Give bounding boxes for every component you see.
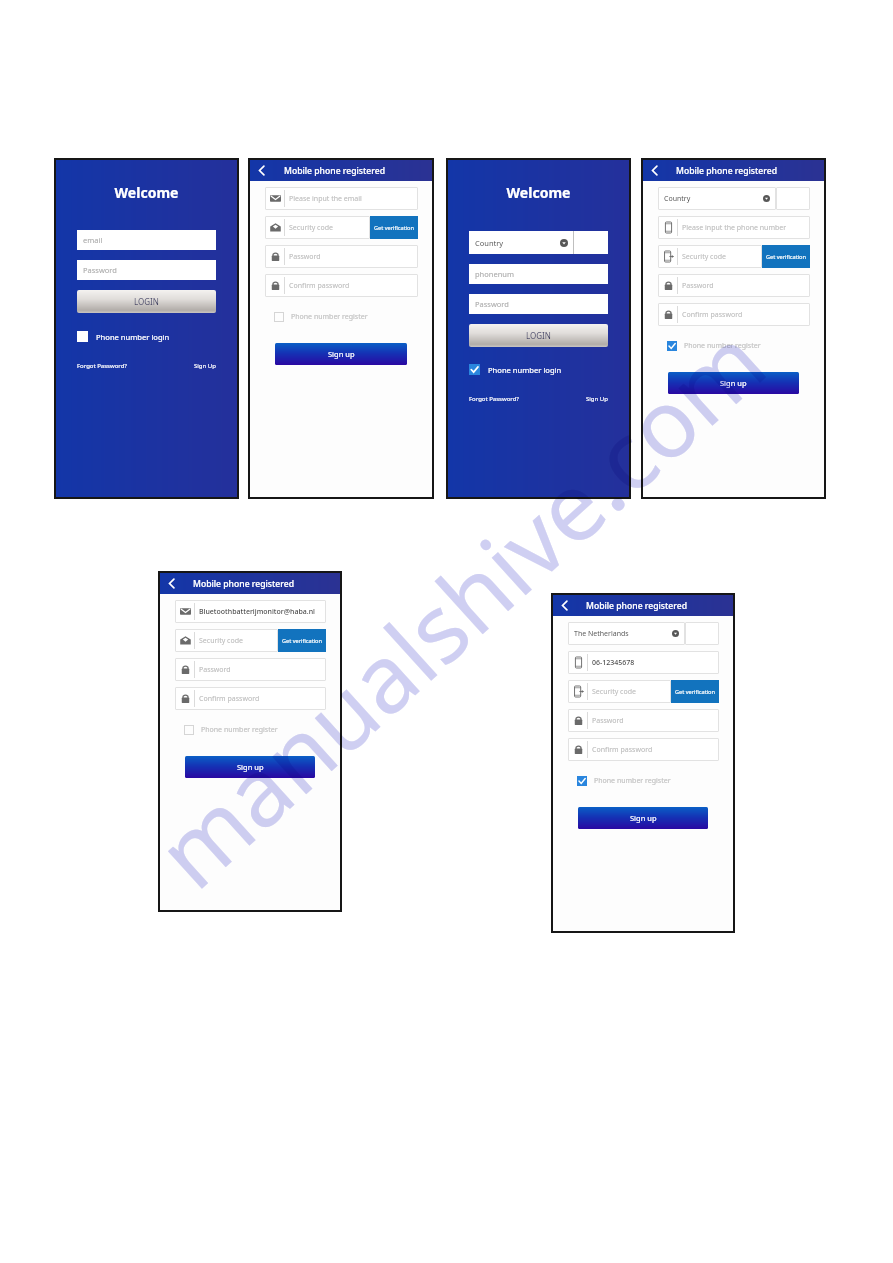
staticText: Password	[682, 281, 714, 291]
staticText: Phone number register	[684, 341, 761, 351]
staticText: Phone number register	[201, 725, 278, 735]
button[interactable]: Confirm password	[568, 738, 719, 761]
button[interactable]: Password	[265, 245, 418, 268]
button[interactable]: Phone number login	[469, 364, 629, 375]
button[interactable]: Phone number register	[577, 776, 733, 786]
staticText: Password	[592, 716, 624, 726]
staticText: Mobile phone registered	[586, 600, 687, 612]
button[interactable]: Get verification	[370, 216, 418, 239]
staticText: Sign up	[328, 349, 355, 359]
staticText: Security code	[592, 687, 636, 697]
button[interactable]: 06-12345678	[568, 651, 719, 674]
staticText: Get verification	[766, 253, 806, 261]
staticText: LOGIN	[526, 330, 551, 341]
button[interactable]: Security code	[175, 629, 278, 652]
button[interactable]: Phone number register	[667, 341, 824, 351]
staticText: Confirm password	[592, 745, 653, 755]
staticText: Bluetoothbatterijmonitor@haba.nl	[199, 607, 315, 617]
staticText: Password	[475, 299, 509, 309]
button[interactable]: Country	[469, 231, 573, 254]
staticText: Confirm password	[682, 310, 743, 320]
staticText: Security code	[682, 252, 726, 262]
staticText: Country	[664, 194, 691, 204]
button[interactable]: Password	[469, 294, 608, 314]
button[interactable]: Country code	[685, 622, 719, 645]
staticText: Please input the phone number	[682, 223, 787, 233]
button[interactable]: Please input the phone number	[658, 216, 810, 239]
staticText: Sign up	[630, 813, 657, 823]
staticText: Phone number register	[291, 312, 368, 322]
button[interactable]: Sign up	[185, 756, 315, 778]
button[interactable]: Sign up	[578, 807, 708, 829]
staticText: Phone number login	[488, 365, 562, 375]
staticText: Phone number register	[594, 776, 671, 786]
staticText: email	[83, 235, 103, 245]
staticText: Mobile phone registered	[193, 578, 294, 590]
button[interactable]: Phone number register	[184, 725, 340, 735]
button[interactable]: Confirm password	[265, 274, 418, 297]
button[interactable]: Please input the email	[265, 187, 418, 210]
staticText: Get verification	[675, 688, 715, 696]
staticText: Password	[83, 265, 117, 275]
button[interactable]: Security code	[568, 680, 671, 703]
staticText: Get verification	[282, 637, 322, 645]
staticText: LOGIN	[134, 296, 159, 307]
button[interactable]: Security code	[658, 245, 762, 268]
button[interactable]: Password	[568, 709, 719, 732]
staticText: Security code	[289, 223, 333, 233]
button[interactable]: Back	[163, 575, 180, 592]
button[interactable]: Country code	[776, 187, 810, 210]
staticText: Get verification	[374, 224, 414, 232]
button[interactable]: The Netherlands	[568, 622, 685, 645]
staticText: The Netherlands	[574, 629, 629, 639]
button[interactable]: Confirm password	[175, 687, 326, 710]
button[interactable]: Forgot Password?	[77, 362, 127, 370]
staticText: phonenum	[475, 269, 514, 279]
staticText: Sign up	[720, 378, 747, 388]
staticText: Phone number login	[96, 332, 170, 342]
button[interactable]: Country	[658, 187, 776, 210]
button[interactable]: email	[77, 230, 216, 250]
button[interactable]: LOGIN	[469, 324, 608, 347]
button[interactable]: Sign up	[275, 343, 407, 365]
button[interactable]: Get verification	[762, 245, 810, 268]
button[interactable]: Get verification	[278, 629, 326, 652]
staticText: Password	[289, 252, 321, 262]
button[interactable]: phonenum	[469, 264, 608, 284]
staticText: 06-12345678	[592, 658, 635, 668]
button[interactable]: Sign Up	[194, 362, 216, 370]
button[interactable]: Password	[77, 260, 216, 280]
button[interactable]: Password	[175, 658, 326, 681]
button[interactable]: Back	[646, 162, 663, 179]
staticText: Welcome	[448, 183, 629, 202]
staticText: Please input the email	[289, 194, 362, 204]
button[interactable]: Security code	[265, 216, 370, 239]
staticText: Confirm password	[289, 281, 350, 291]
button[interactable]: Sign Up	[586, 395, 608, 403]
button[interactable]: Phone number register	[274, 312, 432, 322]
button[interactable]: Phone number login	[77, 331, 237, 342]
button[interactable]: Back	[253, 162, 270, 179]
staticText: Security code	[199, 636, 243, 646]
button[interactable]: Confirm password	[658, 303, 810, 326]
button[interactable]: Back	[556, 597, 573, 614]
staticText: Country	[475, 238, 504, 248]
staticText: Mobile phone registered	[284, 165, 385, 177]
staticText: Password	[199, 665, 231, 675]
button[interactable]: Get verification	[671, 680, 719, 703]
button[interactable]: Sign up	[668, 372, 799, 394]
staticText: Mobile phone registered	[676, 165, 777, 177]
staticText: Sign up	[237, 762, 264, 772]
staticText: Welcome	[56, 183, 237, 202]
button[interactable]: Forgot Password?	[469, 395, 519, 403]
staticText: Confirm password	[199, 694, 260, 704]
button[interactable]: Bluetoothbatterijmonitor@haba.nl	[175, 600, 326, 623]
button[interactable]: Password	[658, 274, 810, 297]
button[interactable]: LOGIN	[77, 290, 216, 313]
